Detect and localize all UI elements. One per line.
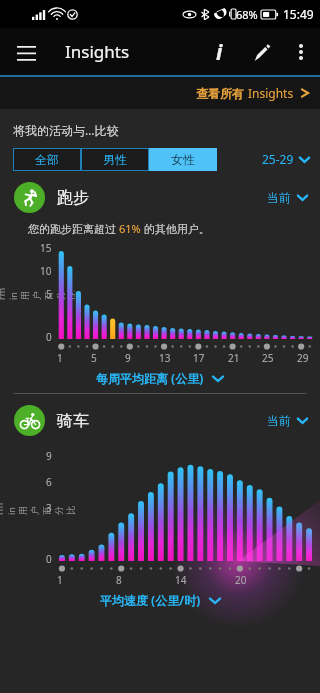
staticText: 1 xyxy=(57,573,63,587)
button[interactable]: 平均速度 (公里/时) xyxy=(0,587,320,608)
button[interactable]: 查看所有 xyxy=(185,79,320,107)
staticText: 8 xyxy=(116,573,122,587)
staticText: 15 xyxy=(40,241,52,255)
staticText: 21 xyxy=(228,351,240,365)
button[interactable]: 25-29 xyxy=(252,147,320,171)
button[interactable]: More options xyxy=(282,33,320,71)
staticText: 9 xyxy=(125,351,131,365)
button[interactable]: Information xyxy=(198,31,240,73)
staticText: 13 xyxy=(159,351,171,365)
staticText: 5 xyxy=(46,287,52,301)
staticText: i xyxy=(216,38,223,67)
staticText: 每周平均距离 (公里) xyxy=(96,370,204,386)
staticText: 5 xyxy=(91,351,97,365)
button[interactable]: 跑步 xyxy=(0,171,320,216)
staticText: 3 xyxy=(46,501,52,515)
staticText: Garmin 用户百分比 xyxy=(0,501,77,515)
staticText: 您的跑步距离超过 xyxy=(28,221,119,236)
staticText: 9 xyxy=(46,449,52,463)
staticText: 10 xyxy=(40,264,52,278)
staticText: 1 xyxy=(57,351,63,365)
staticText: 0 xyxy=(46,552,52,566)
button[interactable]: 骑车 xyxy=(0,394,320,439)
staticText: 20 xyxy=(235,573,247,587)
staticText: 15:49 xyxy=(283,6,314,22)
staticText: 将我的活动与…比较 xyxy=(13,122,119,138)
staticText: 14 xyxy=(175,573,187,587)
staticText: 68% xyxy=(236,7,258,22)
staticText: 平均速度 (公里/时) xyxy=(100,592,201,608)
staticText: 0 xyxy=(46,330,52,344)
staticText: 29 xyxy=(297,351,309,365)
staticText: 6 xyxy=(46,475,52,489)
button[interactable]: 男性 xyxy=(81,148,149,171)
staticText: 当前 xyxy=(267,190,291,205)
staticText: 17 xyxy=(193,351,205,365)
staticText: Garmin 用户百分比 xyxy=(0,286,75,300)
button[interactable]: 女性 xyxy=(149,148,217,171)
staticText: 61% xyxy=(119,221,141,236)
staticText: 跑步 xyxy=(57,188,89,208)
staticText: 当前 xyxy=(267,413,291,428)
staticText: 查看所有 xyxy=(196,86,244,101)
button[interactable]: Menu xyxy=(6,32,46,72)
button[interactable]: Edit xyxy=(240,31,282,73)
button[interactable]: 每周平均距离 (公里) xyxy=(0,365,320,386)
staticText: 骑车 xyxy=(57,411,89,431)
staticText: 的其他用户。 xyxy=(141,221,210,236)
staticText: 女性 xyxy=(171,152,195,167)
staticText: 25-29 xyxy=(262,151,294,167)
staticText: 全部 xyxy=(35,152,59,167)
staticText: Insights xyxy=(248,85,294,101)
staticText: 25 xyxy=(262,351,274,365)
button[interactable]: 全部 xyxy=(13,148,81,171)
staticText: Insights xyxy=(65,40,130,63)
staticText: 男性 xyxy=(103,152,127,167)
